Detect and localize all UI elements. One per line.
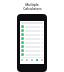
button[interactable]	[20, 24, 44, 28]
button[interactable]: Tab 5	[39, 58, 44, 64]
button[interactable]	[20, 36, 44, 40]
button[interactable]	[20, 32, 44, 36]
button[interactable]: Tab 4	[34, 58, 39, 64]
button[interactable]	[20, 44, 44, 48]
button[interactable]	[20, 48, 44, 52]
button[interactable]: Tab 1	[20, 58, 24, 64]
staticText: Multiple	[25, 2, 39, 6]
button[interactable]: Tab 2	[24, 58, 29, 64]
staticText: Calculators	[23, 6, 42, 10]
button[interactable]	[20, 28, 44, 32]
button[interactable]	[20, 52, 44, 56]
button[interactable]: Tab 3	[29, 58, 34, 64]
button[interactable]	[20, 40, 44, 44]
